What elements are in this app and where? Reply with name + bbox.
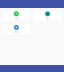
button[interactable]: Aa bbox=[2, 24, 31, 35]
button[interactable]: Aa bbox=[33, 10, 62, 21]
staticText: Aa bbox=[46, 17, 49, 20]
button[interactable]: Aa bbox=[2, 10, 31, 21]
staticText: Aa bbox=[15, 17, 18, 20]
staticText: Aa bbox=[15, 30, 18, 34]
